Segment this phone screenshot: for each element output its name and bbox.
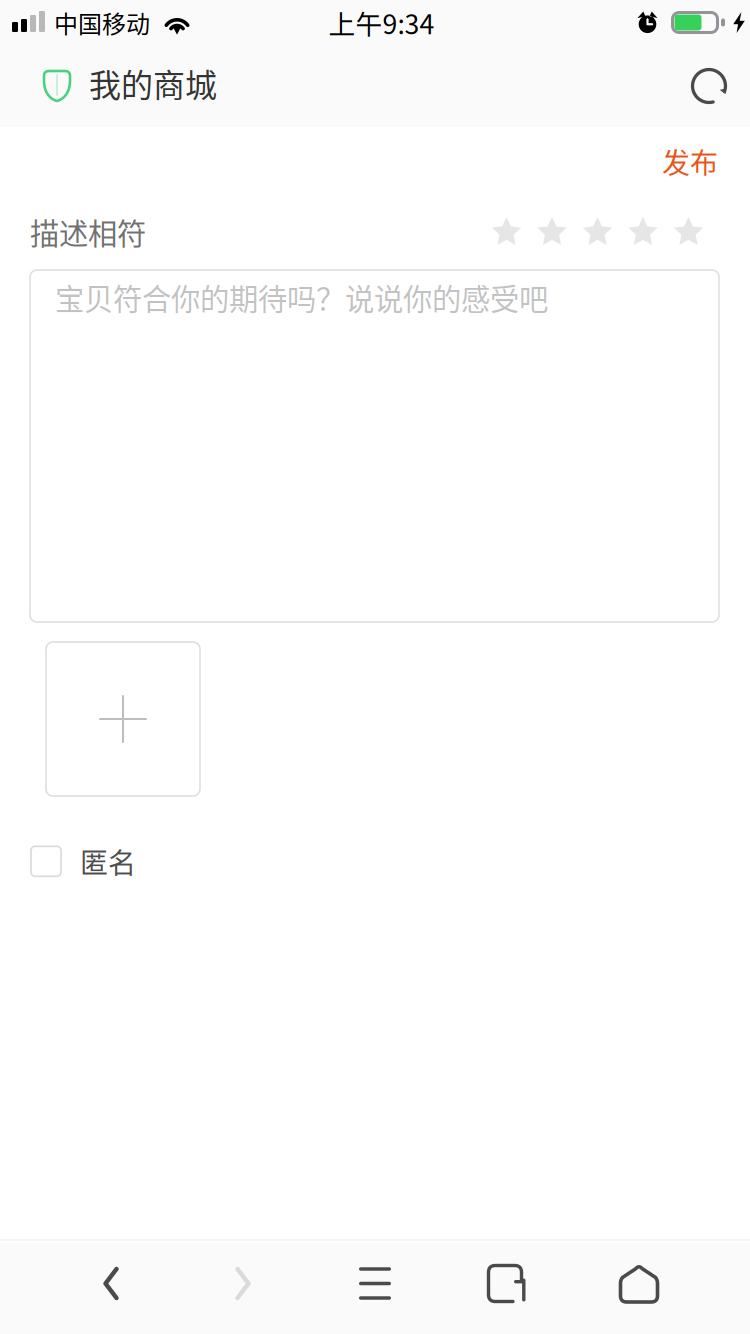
staticText: 匿名 [80, 841, 136, 881]
staticText: 上午9:34 [328, 3, 434, 42]
button[interactable]: Tabs [441, 1247, 573, 1319]
button[interactable]: Forward [177, 1247, 309, 1319]
staticText: 宝贝符合你的期待吗？说说你的感受吧 [55, 276, 548, 318]
button[interactable]: 发布 [644, 127, 750, 187]
button[interactable]: Menu [309, 1247, 441, 1319]
button[interactable]: Back [45, 1247, 177, 1319]
staticText: 发布 [662, 141, 718, 181]
button[interactable]: Add photo [46, 642, 200, 796]
button[interactable]: Refresh [681, 58, 737, 114]
staticText: 我的商城 [89, 60, 217, 106]
staticText: 中国移动 [54, 5, 150, 40]
button[interactable]: Home [573, 1247, 705, 1319]
button[interactable]: 匿名 [31, 831, 136, 891]
staticText: 描述相符 [30, 210, 146, 253]
